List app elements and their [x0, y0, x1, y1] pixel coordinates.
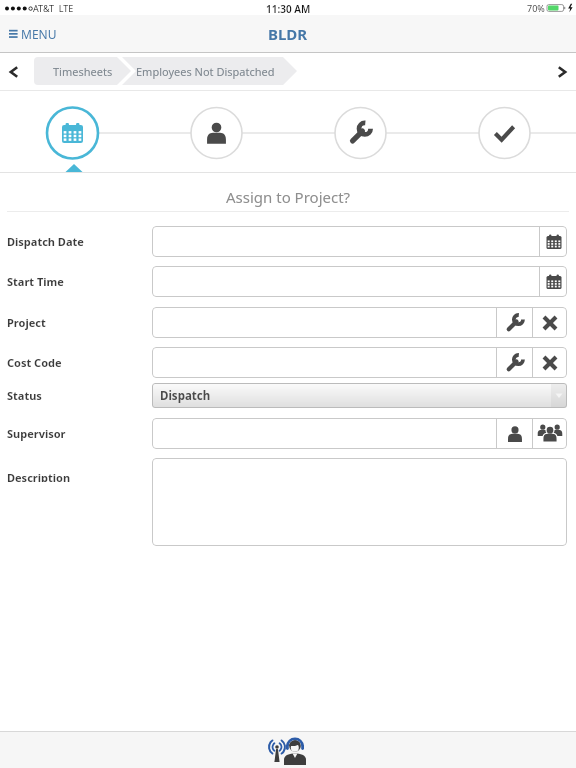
staticText: 70%	[527, 2, 545, 14]
button[interactable]	[533, 418, 567, 449]
button[interactable]	[540, 266, 567, 297]
button[interactable]	[0, 58, 28, 86]
button[interactable]	[264, 733, 312, 767]
button[interactable]	[152, 458, 567, 546]
button[interactable]: Timesheets	[34, 57, 131, 85]
button[interactable]	[497, 307, 532, 338]
button[interactable]	[152, 347, 496, 378]
button[interactable]	[432, 91, 576, 172]
button[interactable]	[152, 418, 496, 449]
staticText: Timesheets	[53, 64, 113, 79]
staticText: Description	[7, 470, 71, 482]
staticText: Cost Code	[7, 355, 62, 370]
button[interactable]	[152, 226, 539, 257]
button[interactable]	[548, 58, 576, 86]
button[interactable]	[533, 307, 567, 338]
staticText: MENU	[21, 26, 57, 42]
button[interactable]	[152, 307, 496, 338]
button[interactable]	[497, 418, 532, 449]
button[interactable]	[540, 226, 567, 257]
staticText: 11:30 AM	[266, 2, 311, 16]
staticText: BLDR	[268, 24, 308, 44]
staticText: Status	[7, 388, 42, 403]
button[interactable]	[288, 91, 432, 172]
staticText: AT&T LTE	[33, 2, 74, 14]
button[interactable]	[152, 266, 539, 297]
button[interactable]	[533, 347, 567, 378]
staticText: Start Time	[7, 274, 64, 289]
staticText: Assign to Project?	[226, 187, 351, 207]
staticText: Dispatch Date	[7, 234, 84, 249]
button[interactable]: MENU	[7, 26, 57, 42]
button[interactable]: Dispatch	[152, 383, 567, 408]
staticText: Supervisor	[7, 426, 66, 441]
button[interactable]	[497, 347, 532, 378]
button[interactable]	[144, 91, 288, 172]
staticText: Employees Not Dispatched	[136, 64, 275, 79]
button[interactable]	[0, 91, 144, 172]
staticText: Project	[7, 315, 46, 330]
staticText: Dispatch	[160, 388, 211, 404]
button[interactable]: Employees Not Dispatched	[125, 57, 285, 85]
